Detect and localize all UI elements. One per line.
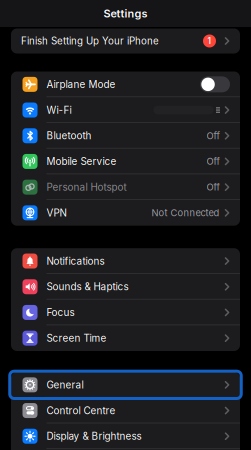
button[interactable]: Mobile Service: [11, 149, 240, 174]
button[interactable]: Finish Setting Up Your iPhone: [11, 28, 240, 53]
staticText: Off: [206, 130, 219, 141]
button[interactable]: VPN: [11, 200, 240, 226]
button[interactable]: Wi-Fi: [11, 97, 240, 123]
staticText: Display & Brightness: [46, 430, 141, 442]
button[interactable]: Notifications: [11, 248, 240, 274]
staticText: Focus: [46, 306, 74, 318]
button[interactable]: Focus: [11, 300, 240, 325]
button[interactable]: Personal Hotspot: [11, 174, 240, 200]
staticText: Mobile Service: [46, 155, 116, 167]
staticText: VPN: [46, 207, 66, 219]
staticText: Not Connected: [151, 207, 219, 218]
button[interactable]: General: [11, 372, 240, 398]
button[interactable]: Airplane Mode: [200, 76, 230, 92]
button[interactable]: Screen Time: [11, 325, 240, 351]
staticText: General: [46, 379, 83, 391]
staticText: 1: [207, 36, 211, 46]
staticText: Off: [206, 156, 219, 167]
staticText: Wi-Fi: [46, 104, 71, 116]
button[interactable]: Sounds & Haptics: [11, 274, 240, 300]
staticText: Bluetooth: [46, 130, 91, 142]
staticText: Airplane Mode: [46, 78, 115, 90]
button[interactable]: Control Centre: [11, 398, 240, 423]
staticText: Personal Hotspot: [46, 181, 126, 193]
button[interactable]: Display & Brightness: [11, 423, 240, 449]
staticText: Control Centre: [46, 404, 115, 416]
staticText: Sounds & Haptics: [46, 281, 128, 293]
staticText: Screen Time: [46, 332, 106, 344]
staticText: Off: [206, 181, 219, 193]
button[interactable]: Bluetooth: [11, 123, 240, 149]
staticText: Finish Setting Up Your iPhone: [21, 35, 159, 47]
staticText: Settings: [103, 7, 147, 20]
staticText: Notifications: [46, 255, 104, 267]
